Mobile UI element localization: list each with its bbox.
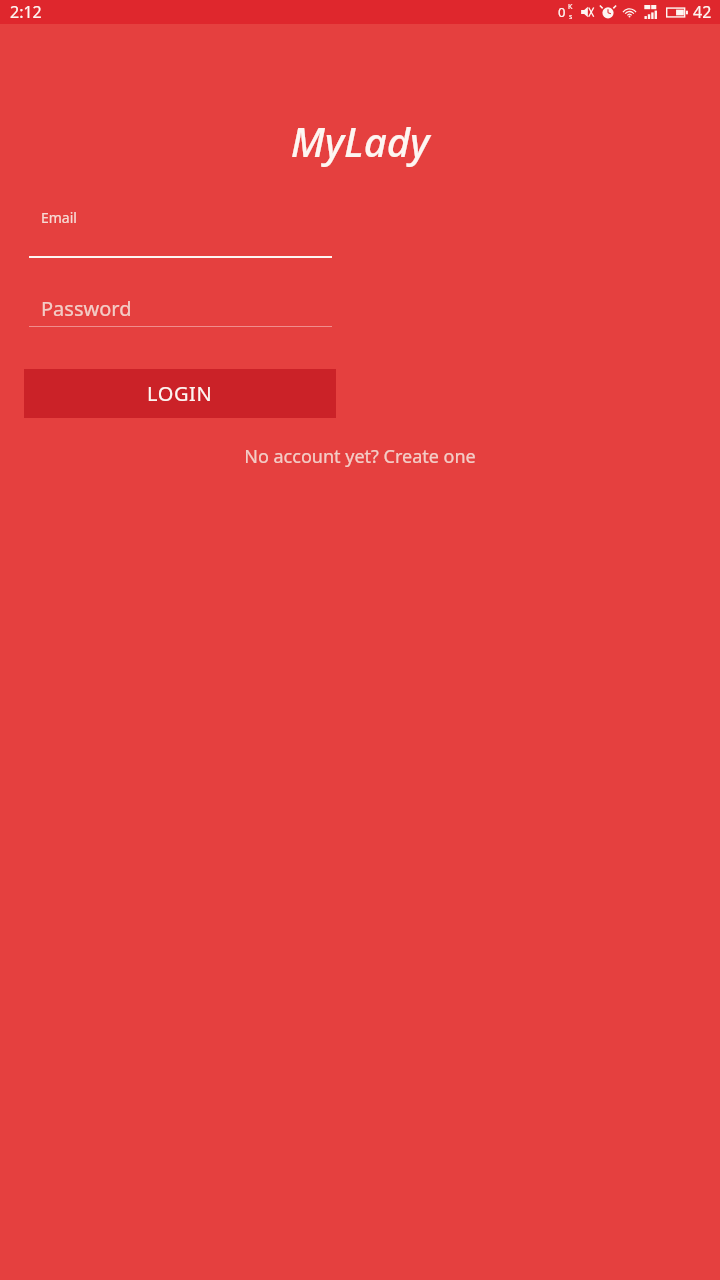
staticText: K [568, 2, 573, 12]
button[interactable]: No account yet? Create one [0, 436, 720, 476]
staticText: 2:12 [10, 1, 42, 23]
staticText: LOGIN [147, 380, 213, 407]
staticText: No account yet? Create one [244, 444, 476, 469]
button[interactable]: Email [29, 196, 332, 258]
staticText: 0 [558, 3, 566, 21]
staticText: Email [41, 208, 77, 227]
staticText: 42 [693, 1, 712, 23]
staticText: s [569, 12, 573, 22]
staticText: MyLady [0, 114, 720, 168]
button[interactable]: LOGIN [24, 369, 336, 418]
button[interactable]: Password [29, 296, 332, 327]
staticText: Password [41, 295, 132, 322]
